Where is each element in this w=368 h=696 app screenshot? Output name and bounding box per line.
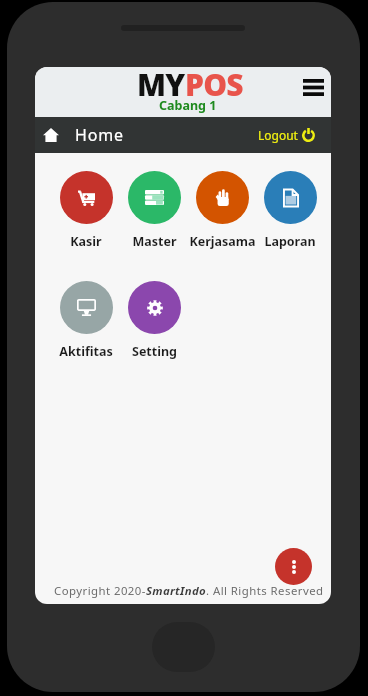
button[interactable]: Setting bbox=[120, 281, 188, 360]
staticText: Cabang 1 bbox=[159, 97, 217, 114]
staticText: Aktifitas bbox=[59, 343, 113, 360]
staticText: Setting bbox=[132, 343, 177, 360]
staticText: SmartIndo bbox=[146, 583, 206, 599]
staticText: Laporan bbox=[264, 233, 316, 250]
button[interactable]: Kasir bbox=[52, 171, 120, 250]
staticText: Home bbox=[75, 124, 124, 146]
button[interactable]: Menu bbox=[297, 71, 329, 103]
staticText: POS bbox=[185, 67, 243, 105]
staticText: . All Rights Reserved bbox=[206, 583, 324, 599]
button[interactable]: Aktifitas bbox=[52, 281, 120, 360]
staticText: Kasir bbox=[70, 233, 102, 250]
button[interactable]: Home bbox=[43, 124, 124, 146]
button[interactable]: Logout bbox=[258, 127, 315, 143]
button[interactable]: More options bbox=[275, 548, 312, 585]
staticText: Copyright 2020- bbox=[54, 583, 146, 599]
button[interactable]: Laporan bbox=[256, 171, 324, 250]
staticText: Logout bbox=[258, 127, 298, 143]
button[interactable]: Master bbox=[120, 171, 188, 250]
staticText: Master bbox=[132, 233, 177, 250]
staticText: Kerjasama bbox=[189, 233, 256, 250]
staticText: MY bbox=[137, 67, 185, 105]
button[interactable]: Kerjasama bbox=[188, 171, 256, 250]
